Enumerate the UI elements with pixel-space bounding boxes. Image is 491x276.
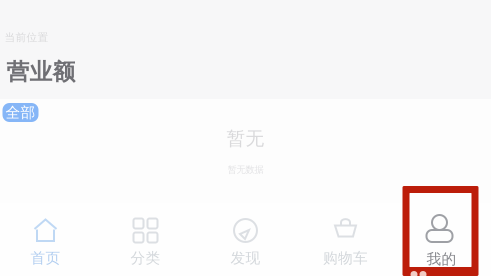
staticText: 暂无数据 [227,164,263,175]
staticText: 营业额 [6,58,75,86]
staticText: 购物车 [323,249,368,267]
staticText: 暂无 [226,127,264,150]
staticText: 我的 [426,250,456,268]
staticText: 发现 [230,249,260,267]
button[interactable]: 我的 [395,203,491,276]
staticText: 首页 [30,249,60,267]
button[interactable]: 分类 [95,203,195,276]
button[interactable]: 购物车 [295,203,395,276]
staticText: 分类 [130,249,160,267]
staticText: 全部 [5,103,35,121]
staticText: 我的 [430,251,460,269]
button[interactable]: 发现 [195,203,295,276]
staticText: 当前位置 [4,31,48,44]
button[interactable]: 全部 [2,103,38,122]
button[interactable]: 首页 [0,203,95,276]
